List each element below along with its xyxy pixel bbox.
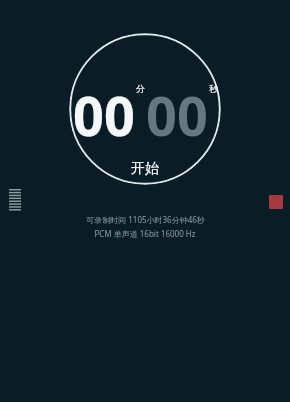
staticText: 可录制时间 1105小时36分钟46秒 <box>86 214 205 225</box>
button[interactable]: Stop <box>262 188 290 216</box>
staticText: 开始 <box>131 160 159 178</box>
button[interactable]: Recordings list <box>3 183 27 217</box>
staticText: 秒 <box>209 83 218 94</box>
button[interactable]: 00 <box>69 33 221 185</box>
staticText: 00 <box>146 78 208 152</box>
staticText: 分 <box>136 83 145 94</box>
staticText: PCM 单声道 16bit 16000 Hz <box>94 228 196 239</box>
staticText: 00 <box>73 78 135 152</box>
